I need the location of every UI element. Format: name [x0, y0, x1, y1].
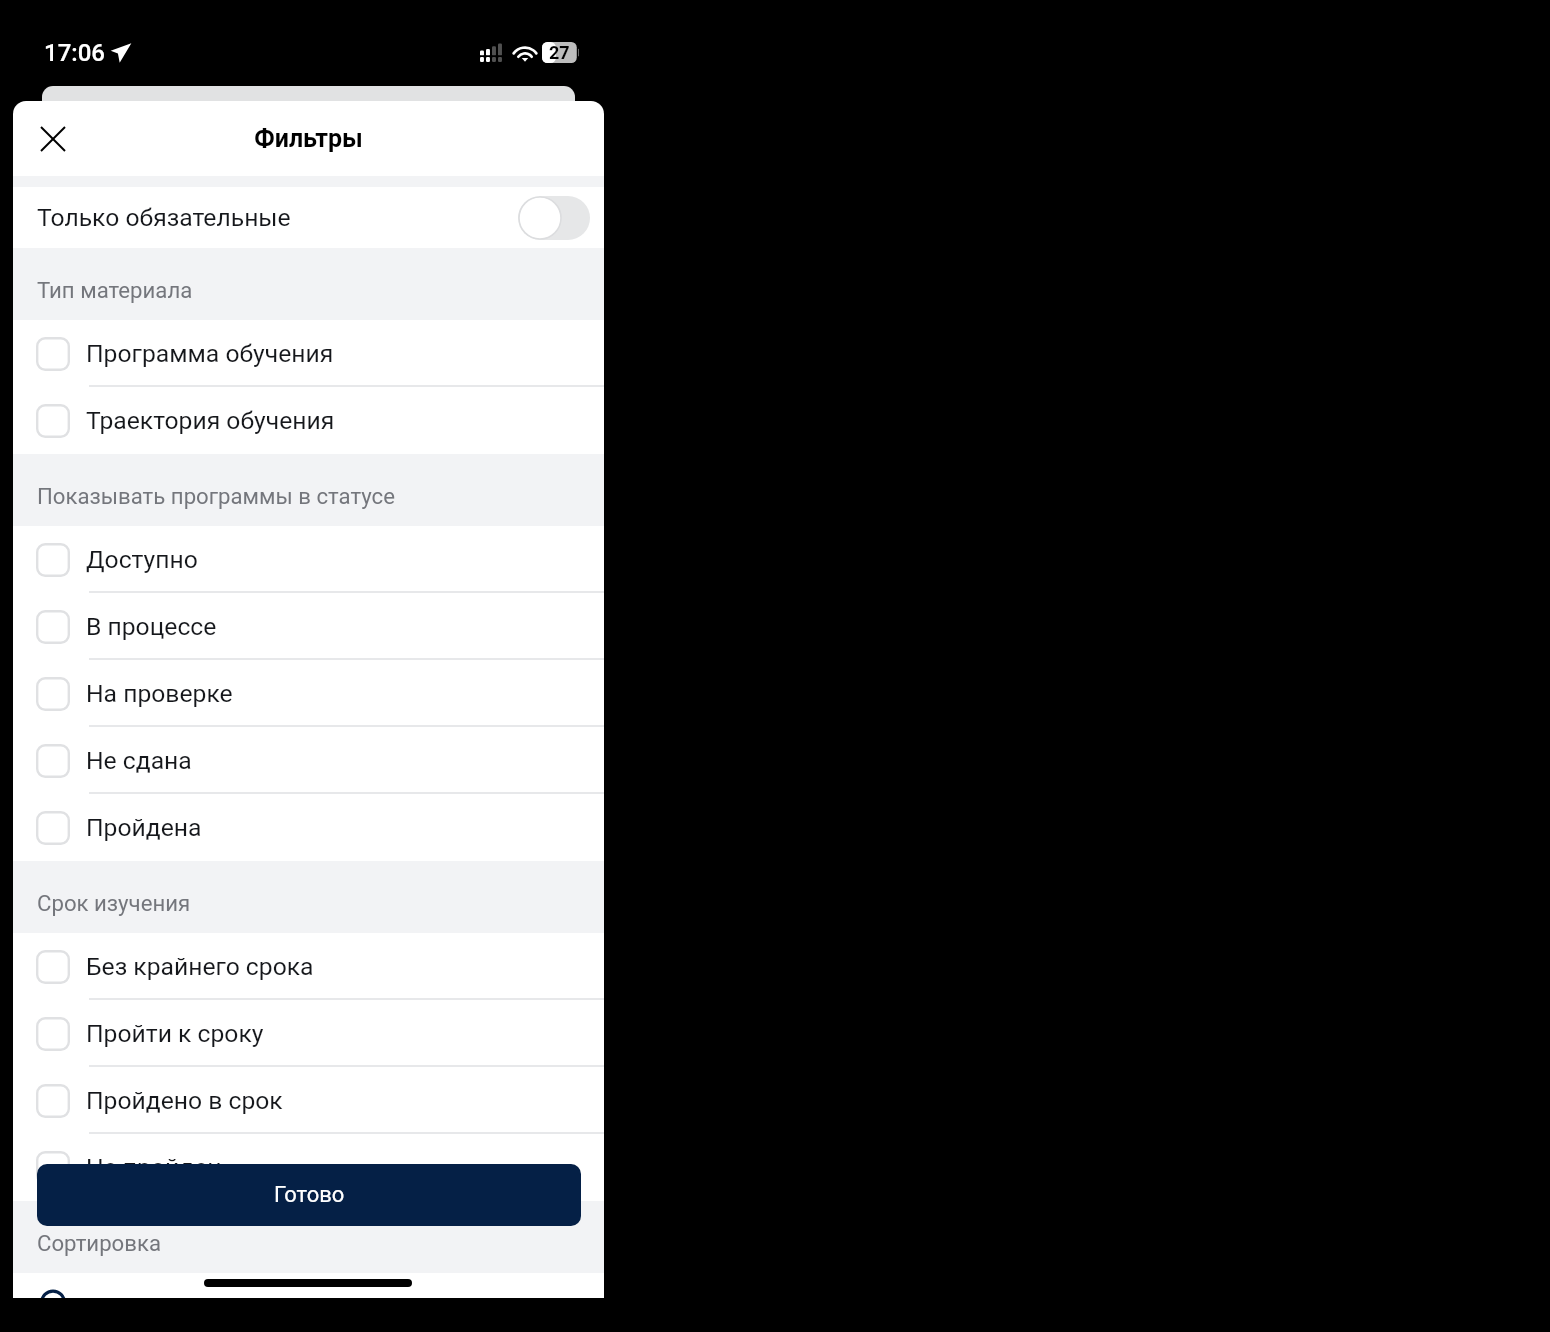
staticText: В процессе: [86, 612, 217, 641]
button[interactable]: Только обязательные: [13, 187, 604, 248]
staticText: Показывать программы в статусе: [37, 483, 395, 509]
staticText: Только обязательные: [37, 203, 291, 232]
staticText: Срок изучения: [37, 890, 191, 916]
staticText: Пройдена: [86, 813, 202, 842]
button[interactable]: По умолчанию: [13, 1273, 604, 1298]
staticText: На проверке: [86, 679, 233, 708]
button[interactable]: Не сдана: [13, 727, 604, 794]
button[interactable]: Пройдена: [13, 794, 604, 861]
staticText: 17:06: [44, 39, 105, 67]
button[interactable]: В процессе: [13, 593, 604, 660]
staticText: 27: [549, 42, 570, 63]
staticText: Программа обучения: [86, 339, 334, 368]
staticText: Не сдана: [86, 746, 192, 775]
button[interactable]: Траектория обучения: [13, 387, 604, 454]
button[interactable]: Не пройден: [13, 1134, 604, 1201]
button[interactable]: Программа обучения: [13, 320, 604, 387]
staticText: Не пройден: [86, 1153, 222, 1182]
staticText: Доступно: [86, 545, 198, 574]
staticText: Траектория обучения: [86, 406, 335, 435]
button[interactable]: Закрыть: [26, 112, 80, 166]
staticText: Пройти к сроку: [86, 1019, 264, 1048]
button[interactable]: Без крайнего срока: [13, 933, 604, 1000]
staticText: Пройдено в срок: [86, 1086, 283, 1115]
button[interactable]: Пройти к сроку: [13, 1000, 604, 1067]
staticText: Тип материала: [37, 277, 193, 303]
button[interactable]: Пройдено в срок: [13, 1067, 604, 1134]
button[interactable]: Доступно: [13, 526, 604, 593]
staticText: Фильтры: [254, 124, 363, 153]
staticText: Готово: [274, 1182, 345, 1208]
button[interactable]: На проверке: [13, 660, 604, 727]
other: Только обязательные: [518, 196, 590, 240]
staticText: Без крайнего срока: [86, 952, 314, 981]
button[interactable]: Готово: [37, 1164, 581, 1226]
staticText: Сортировка: [37, 1230, 162, 1256]
